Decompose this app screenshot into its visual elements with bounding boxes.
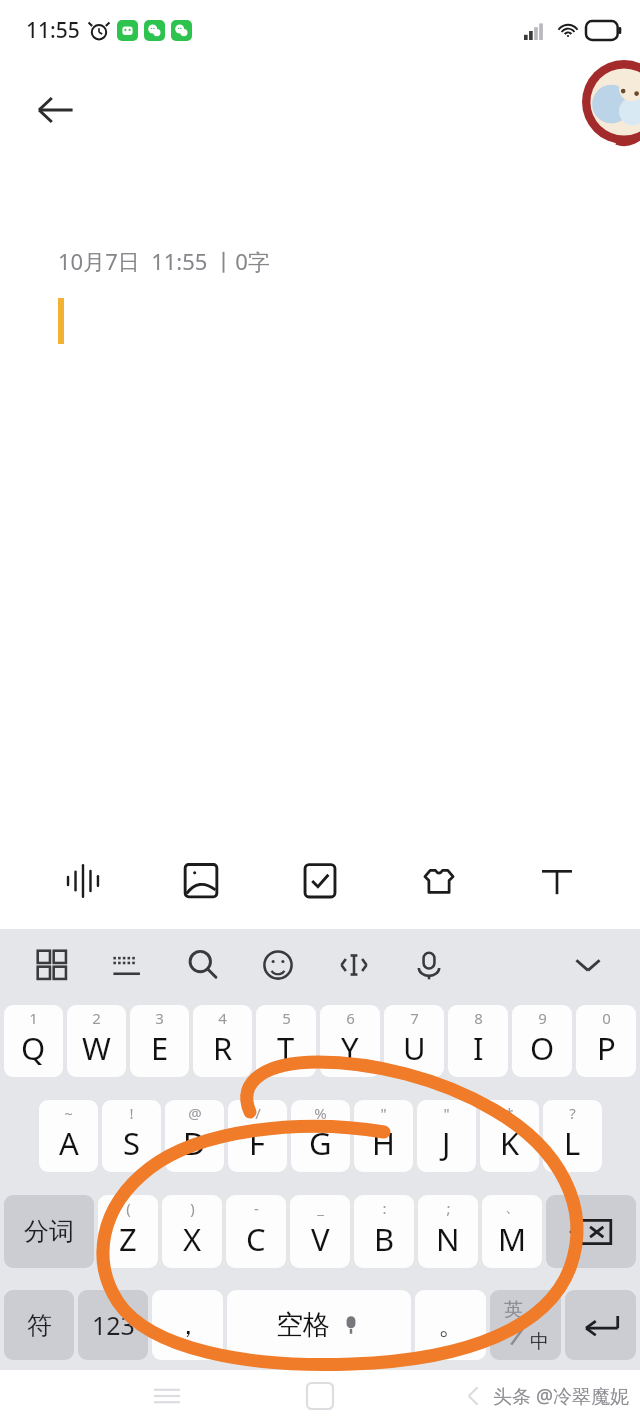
button[interactable]: Back bbox=[447, 1370, 501, 1422]
button[interactable]: ( bbox=[98, 1195, 158, 1268]
button[interactable]: Voice bbox=[47, 845, 119, 917]
button[interactable]: Hide keyboard bbox=[562, 939, 614, 991]
button[interactable]: Recents bbox=[140, 1370, 194, 1422]
staticText: T bbox=[277, 1027, 295, 1069]
staticText: I bbox=[473, 1027, 484, 1069]
button[interactable]: % bbox=[291, 1100, 350, 1172]
staticText: ) bbox=[190, 1198, 195, 1218]
staticText: E bbox=[151, 1027, 169, 1069]
staticText: C bbox=[246, 1218, 266, 1260]
button[interactable]: 0 bbox=[576, 1005, 636, 1077]
button[interactable]: Image bbox=[165, 845, 237, 917]
staticText: 11:55 bbox=[26, 16, 80, 45]
button[interactable]: " bbox=[417, 1100, 476, 1172]
staticText: 5 bbox=[282, 1008, 291, 1028]
staticText: Q bbox=[21, 1027, 46, 1069]
button[interactable]: Backspace bbox=[546, 1195, 636, 1268]
staticText: Z bbox=[119, 1218, 137, 1260]
staticText: X bbox=[183, 1218, 202, 1260]
staticText: B bbox=[374, 1218, 395, 1260]
button[interactable]: Move cursor bbox=[328, 939, 380, 991]
button[interactable]: ， bbox=[152, 1290, 223, 1360]
button[interactable]: " bbox=[354, 1100, 413, 1172]
staticText: ( bbox=[126, 1198, 131, 1218]
staticText: 、 bbox=[505, 1198, 520, 1217]
button[interactable]: 符 bbox=[4, 1290, 74, 1360]
button[interactable]: Emoji bbox=[252, 939, 304, 991]
staticText: O bbox=[530, 1027, 555, 1069]
button[interactable]: @ bbox=[165, 1100, 224, 1172]
staticText: ? bbox=[569, 1103, 576, 1123]
staticText: M bbox=[498, 1218, 527, 1260]
button[interactable]: Enter bbox=[565, 1290, 636, 1360]
button[interactable]: 1 bbox=[4, 1005, 63, 1077]
staticText: U bbox=[403, 1027, 426, 1069]
staticText: H bbox=[372, 1122, 395, 1164]
button[interactable]: 9 bbox=[512, 1005, 572, 1077]
staticText: " bbox=[380, 1103, 387, 1123]
staticText: Y bbox=[341, 1027, 359, 1069]
staticText: 6 bbox=[346, 1008, 355, 1028]
button[interactable]: 3 bbox=[130, 1005, 189, 1077]
staticText: 7 bbox=[410, 1008, 419, 1028]
staticText: ! bbox=[129, 1103, 134, 1123]
button[interactable]: ~ bbox=[39, 1100, 98, 1172]
button[interactable]: * bbox=[480, 1100, 539, 1172]
button[interactable]: 4 bbox=[193, 1005, 252, 1077]
button[interactable]: Search bbox=[177, 939, 229, 991]
staticText: 中 bbox=[530, 1330, 549, 1354]
staticText: % bbox=[314, 1103, 327, 1123]
button[interactable]: 空格 bbox=[227, 1290, 411, 1360]
button[interactable]: 7 bbox=[384, 1005, 444, 1077]
staticText: K bbox=[500, 1122, 520, 1164]
staticText: 头条 @冷翠魔妮 bbox=[493, 1383, 630, 1409]
staticText: 英 bbox=[504, 1298, 523, 1322]
button[interactable]: Home bbox=[293, 1370, 347, 1422]
button[interactable]: Keyboard layout bbox=[101, 939, 153, 991]
button[interactable]: 123 bbox=[78, 1290, 148, 1360]
button[interactable]: ) bbox=[162, 1195, 222, 1268]
button[interactable]: ? bbox=[543, 1100, 602, 1172]
button[interactable]: 分词 bbox=[4, 1195, 94, 1268]
button[interactable]: 6 bbox=[320, 1005, 380, 1077]
button[interactable]: : bbox=[354, 1195, 414, 1268]
button[interactable]: 8 bbox=[448, 1005, 508, 1077]
button[interactable]: 5 bbox=[256, 1005, 316, 1077]
staticText: N bbox=[436, 1218, 460, 1260]
staticText: 符 bbox=[27, 1310, 52, 1341]
staticText: _ bbox=[317, 1198, 324, 1218]
staticText: - bbox=[254, 1198, 259, 1218]
button[interactable]: 。 bbox=[415, 1290, 486, 1360]
button[interactable]: Back bbox=[26, 81, 84, 139]
button[interactable]: Style bbox=[403, 845, 475, 917]
staticText: 。 bbox=[438, 1309, 464, 1342]
staticText: / bbox=[255, 1103, 261, 1123]
staticText: F bbox=[249, 1122, 266, 1164]
button[interactable]: _ bbox=[290, 1195, 350, 1268]
staticText: 123 bbox=[92, 1308, 135, 1342]
staticText: : bbox=[382, 1198, 387, 1218]
button[interactable]: 、 bbox=[482, 1195, 542, 1268]
staticText: D bbox=[183, 1122, 206, 1164]
staticText: " bbox=[443, 1103, 450, 1123]
button[interactable]: ! bbox=[102, 1100, 161, 1172]
staticText: 9 bbox=[538, 1008, 547, 1028]
button[interactable]: Text format bbox=[521, 845, 593, 917]
button[interactable]: Checklist bbox=[284, 845, 356, 917]
button[interactable]: Switch language bbox=[490, 1290, 561, 1360]
staticText: P bbox=[597, 1027, 616, 1069]
staticText: ~ bbox=[64, 1103, 73, 1123]
button[interactable]: Voice input bbox=[403, 939, 455, 991]
button[interactable]: Apps bbox=[26, 939, 78, 991]
staticText: W bbox=[82, 1027, 111, 1069]
staticText: S bbox=[123, 1122, 141, 1164]
staticText: L bbox=[564, 1122, 581, 1164]
button[interactable]: 2 bbox=[67, 1005, 126, 1077]
staticText: 2 bbox=[92, 1008, 101, 1028]
button[interactable]: / bbox=[228, 1100, 287, 1172]
staticText: V bbox=[311, 1218, 330, 1260]
staticText: 10月7日 11:55 丨0字 bbox=[58, 246, 270, 276]
staticText: R bbox=[213, 1027, 233, 1069]
button[interactable]: - bbox=[226, 1195, 286, 1268]
button[interactable]: ; bbox=[418, 1195, 478, 1268]
